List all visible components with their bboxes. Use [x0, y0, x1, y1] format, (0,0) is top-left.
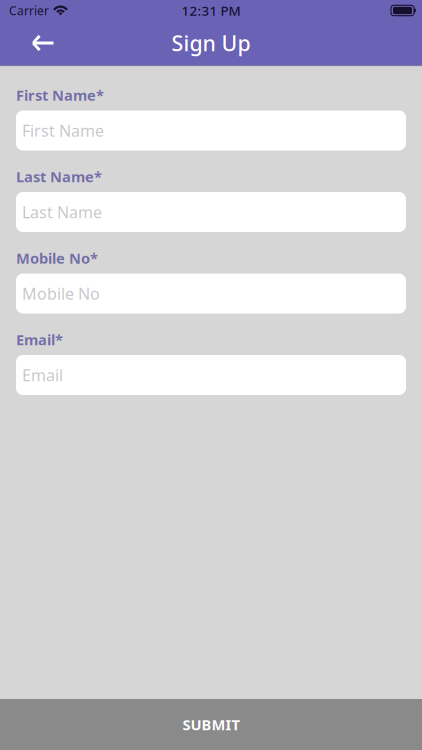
- button[interactable]: SUBMIT: [0, 699, 422, 750]
- button[interactable]: Email: [16, 355, 406, 395]
- button[interactable]: Mobile No: [16, 273, 406, 313]
- staticText: Mobile No*: [16, 248, 98, 268]
- staticText: 12:31 PM: [181, 2, 240, 19]
- button[interactable]: Back: [0, 21, 68, 65]
- staticText: Mobile No: [22, 283, 100, 304]
- staticText: Last Name: [22, 201, 102, 223]
- button[interactable]: Last Name: [16, 192, 406, 232]
- staticText: Email*: [16, 330, 63, 349]
- staticText: Last Name*: [16, 167, 102, 186]
- staticText: First Name: [22, 120, 104, 141]
- button[interactable]: First Name: [16, 110, 406, 150]
- staticText: Carrier: [9, 2, 49, 18]
- staticText: First Name*: [16, 85, 104, 105]
- staticText: Email: [22, 364, 63, 386]
- staticText: Sign Up: [171, 29, 250, 57]
- staticText: SUBMIT: [182, 715, 239, 734]
